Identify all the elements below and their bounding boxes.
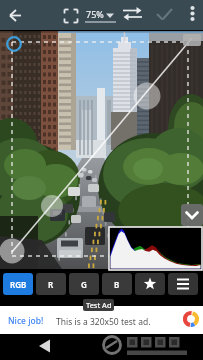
button[interactable]	[119, 2, 146, 28]
button[interactable]	[152, 2, 178, 28]
button[interactable]: 75%	[84, 4, 118, 26]
staticText: This is a 320x50 test ad.	[56, 316, 151, 328]
button[interactable]: RGB	[3, 273, 33, 295]
button[interactable]: R	[36, 273, 66, 295]
staticText: 75%	[86, 8, 104, 20]
button[interactable]: G	[69, 273, 99, 295]
button[interactable]	[58, 3, 84, 29]
staticText: R	[48, 279, 54, 290]
button[interactable]	[2, 2, 28, 28]
button[interactable]	[135, 273, 165, 295]
button[interactable]	[168, 273, 198, 295]
staticText: Nice job!	[8, 315, 44, 327]
staticText: RGB	[10, 279, 27, 290]
staticText: G	[81, 279, 87, 290]
button[interactable]	[182, 2, 203, 28]
button[interactable]	[181, 204, 203, 226]
staticText: B	[114, 279, 120, 290]
staticText: Test Ad	[86, 300, 112, 310]
button[interactable]: Nice job!	[0, 306, 203, 334]
button[interactable]: B	[102, 273, 132, 295]
